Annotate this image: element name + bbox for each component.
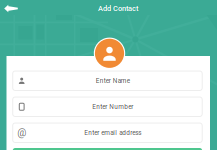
button[interactable]: Save contact (13, 148, 202, 150)
button[interactable]: Enter Number (13, 97, 202, 116)
staticText: Enter Number (92, 103, 133, 110)
staticText: Enter email address (84, 129, 141, 136)
button[interactable]: Enter email address (13, 123, 202, 142)
staticText: Add Contact (98, 4, 138, 13)
button[interactable]: Back (0, 0, 22, 16)
staticText: @ (17, 127, 26, 139)
staticText: Enter Name (96, 77, 130, 84)
button[interactable]: Enter Name (13, 71, 202, 90)
